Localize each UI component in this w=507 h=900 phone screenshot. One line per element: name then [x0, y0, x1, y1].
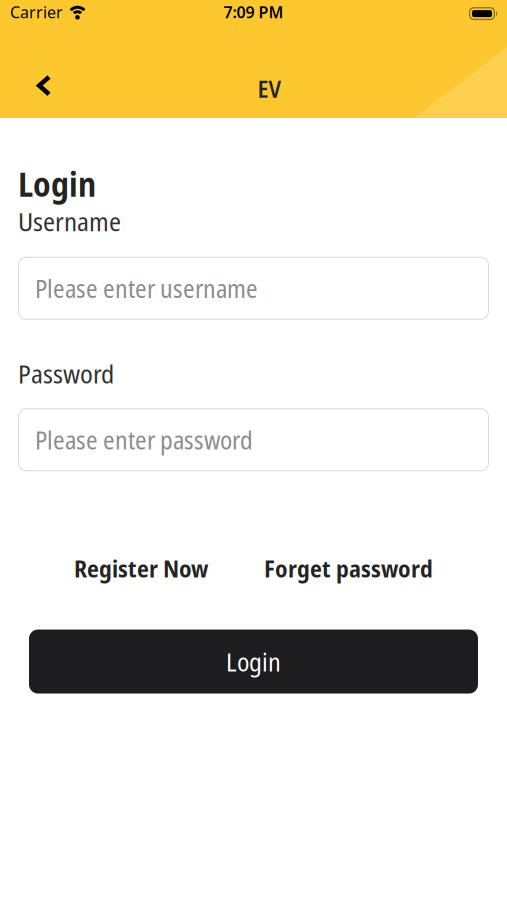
button[interactable]: Forget password — [264, 552, 433, 584]
staticText: Password — [18, 356, 114, 391]
staticText: Register Now — [74, 552, 208, 584]
staticText: Please enter username — [35, 271, 258, 305]
button[interactable]: Back — [0, 0, 52, 97]
button[interactable]: Login — [29, 629, 478, 693]
button[interactable]: Register Now — [74, 552, 208, 584]
staticText: Login — [18, 161, 96, 206]
button[interactable]: Please enter username — [18, 257, 489, 320]
staticText: Username — [18, 203, 121, 239]
staticText: Login — [226, 644, 281, 679]
button[interactable]: Please enter password — [18, 408, 489, 471]
staticText: Please enter password — [35, 423, 253, 457]
staticText: Forget password — [264, 552, 433, 584]
staticText: 7:09 PM — [223, 1, 283, 23]
staticText: Carrier — [10, 1, 63, 23]
staticText: EV — [257, 72, 281, 105]
